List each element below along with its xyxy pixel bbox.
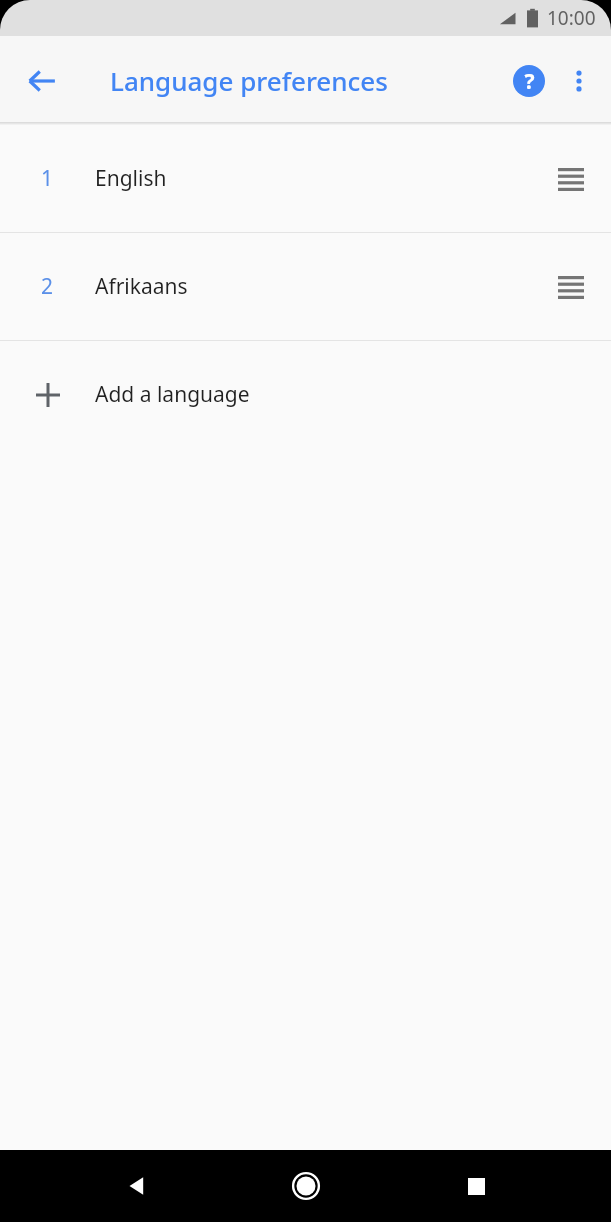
staticText: Language preferences <box>110 63 388 98</box>
other: Reorder <box>549 157 593 201</box>
staticText: 2 <box>41 272 54 301</box>
other: Reorder <box>549 265 593 309</box>
staticText: 1 <box>41 164 54 193</box>
button[interactable]: Help <box>505 57 553 105</box>
button[interactable]: Recent apps <box>406 1150 546 1222</box>
staticText: ? <box>524 67 535 96</box>
button[interactable]: More options <box>555 57 603 105</box>
staticText: 10:00 <box>547 5 596 31</box>
button[interactable]: 1 <box>0 125 611 232</box>
staticText: Afrikaans <box>95 272 188 301</box>
button[interactable]: Back <box>53 1150 221 1222</box>
staticText: Add a language <box>95 380 250 409</box>
button[interactable]: 2 <box>0 233 611 340</box>
button[interactable]: Home <box>251 1150 361 1222</box>
staticText: English <box>95 164 167 193</box>
button[interactable]: Add a language <box>0 341 611 448</box>
button[interactable]: Back <box>18 57 66 105</box>
